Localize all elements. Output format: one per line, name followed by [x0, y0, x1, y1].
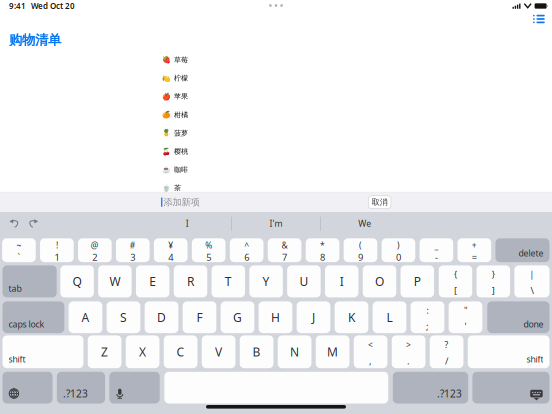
- button[interactable]: D: [145, 301, 178, 333]
- button[interactable]: -: [420, 238, 453, 262]
- staticText: ,: [369, 355, 372, 367]
- button[interactable]: /: [430, 335, 463, 368]
- button[interactable]: done: [487, 301, 549, 333]
- button[interactable]: .?123: [393, 372, 468, 403]
- staticText: <: [368, 339, 373, 350]
- staticText: ?: [445, 339, 449, 350]
- button[interactable]: J: [297, 301, 330, 333]
- button[interactable]: 列表选项: [532, 13, 546, 25]
- button[interactable]: B: [240, 335, 273, 368]
- button[interactable]: 🍊: [162, 106, 390, 124]
- staticText: 柠檬: [174, 74, 188, 83]
- button[interactable]: 🍓: [162, 51, 390, 69]
- button[interactable]: 🍋: [162, 69, 390, 87]
- button[interactable]: \: [514, 265, 549, 297]
- button[interactable]: caps lock: [2, 301, 64, 333]
- button[interactable]: C: [164, 335, 197, 368]
- button[interactable]: .: [392, 335, 425, 368]
- staticText: *: [320, 239, 325, 251]
- button[interactable]: O: [363, 265, 396, 297]
- button[interactable]: 4: [154, 238, 187, 262]
- button[interactable]: 3: [116, 238, 150, 262]
- button[interactable]: ,: [354, 335, 387, 368]
- button[interactable]: N: [278, 335, 311, 368]
- button[interactable]: 🍎: [162, 87, 390, 106]
- staticText: I'm: [269, 218, 282, 229]
- button[interactable]: M: [316, 335, 349, 368]
- button[interactable]: 隐藏键盘: [472, 372, 549, 403]
- button[interactable]: 🍍: [162, 124, 390, 142]
- button[interactable]: 2: [78, 238, 112, 262]
- staticText: ]: [492, 284, 495, 297]
- staticText: shift: [526, 353, 543, 365]
- button[interactable]: 🍒: [162, 142, 390, 160]
- button[interactable]: 空格: [164, 372, 388, 403]
- button[interactable]: X: [126, 335, 159, 368]
- button[interactable]: H: [259, 301, 292, 333]
- button[interactable]: 8: [306, 238, 339, 262]
- staticText: 8: [320, 251, 325, 263]
- button[interactable]: I'm: [232, 214, 320, 232]
- staticText: #: [130, 239, 136, 251]
- button[interactable]: tab: [2, 265, 57, 297]
- staticText: .: [407, 355, 410, 367]
- button[interactable]: 7: [268, 238, 301, 262]
- button[interactable]: ☕: [162, 160, 390, 179]
- staticText: done: [523, 318, 543, 330]
- button[interactable]: A: [69, 301, 102, 333]
- button[interactable]: U: [287, 265, 321, 297]
- button[interactable]: 0: [382, 238, 415, 262]
- button[interactable]: 语音输入: [109, 372, 160, 403]
- button[interactable]: S: [107, 301, 140, 333]
- button[interactable]: K: [335, 301, 368, 333]
- staticText: T: [225, 273, 232, 289]
- button[interactable]: W: [98, 265, 132, 297]
- button[interactable]: 1: [40, 238, 74, 262]
- button[interactable]: P: [401, 265, 434, 297]
- staticText: caps lock: [9, 318, 45, 330]
- button[interactable]: 6: [230, 238, 263, 262]
- button[interactable]: 撤销: [9, 218, 21, 230]
- button[interactable]: Q: [60, 265, 94, 297]
- button[interactable]: G: [221, 301, 254, 333]
- button[interactable]: T: [211, 265, 245, 297]
- button[interactable]: `: [2, 238, 36, 262]
- staticText: 🍊: [162, 111, 171, 119]
- staticText: 咖啡: [174, 165, 188, 174]
- staticText: {: [454, 269, 457, 280]
- staticText: 柑橘: [174, 110, 188, 119]
- button[interactable]: [: [439, 265, 472, 297]
- button[interactable]: R: [174, 265, 207, 297]
- button[interactable]: 9: [344, 238, 377, 262]
- button[interactable]: I: [143, 214, 232, 232]
- button[interactable]: 重做: [26, 218, 38, 230]
- staticText: 苹果: [174, 92, 188, 101]
- button[interactable]: ': [449, 301, 482, 333]
- button[interactable]: shift: [468, 335, 550, 368]
- button[interactable]: delete: [495, 238, 549, 262]
- staticText: 2: [92, 251, 97, 263]
- staticText: Y: [263, 273, 270, 289]
- button[interactable]: We: [320, 214, 409, 232]
- button[interactable]: .?123: [57, 372, 105, 403]
- button[interactable]: F: [183, 301, 216, 333]
- button[interactable]: ]: [477, 265, 510, 297]
- button[interactable]: Z: [88, 335, 121, 368]
- button[interactable]: V: [202, 335, 235, 368]
- button[interactable]: =: [457, 238, 491, 262]
- button[interactable]: 🍵: [162, 179, 390, 197]
- button[interactable]: 5: [192, 238, 225, 262]
- staticText: ~: [16, 239, 21, 251]
- staticText: :: [426, 304, 428, 316]
- button[interactable]: L: [373, 301, 406, 333]
- button[interactable]: I: [325, 265, 358, 297]
- button[interactable]: 取消: [368, 196, 391, 209]
- staticText: We: [358, 218, 371, 229]
- staticText: 3: [130, 251, 135, 263]
- button[interactable]: 切换键盘: [2, 372, 52, 403]
- button[interactable]: Y: [249, 265, 283, 297]
- button[interactable]: E: [136, 265, 169, 297]
- button[interactable]: shift: [2, 335, 83, 368]
- button[interactable]: ;: [411, 301, 444, 333]
- staticText: 菠萝: [174, 129, 188, 137]
